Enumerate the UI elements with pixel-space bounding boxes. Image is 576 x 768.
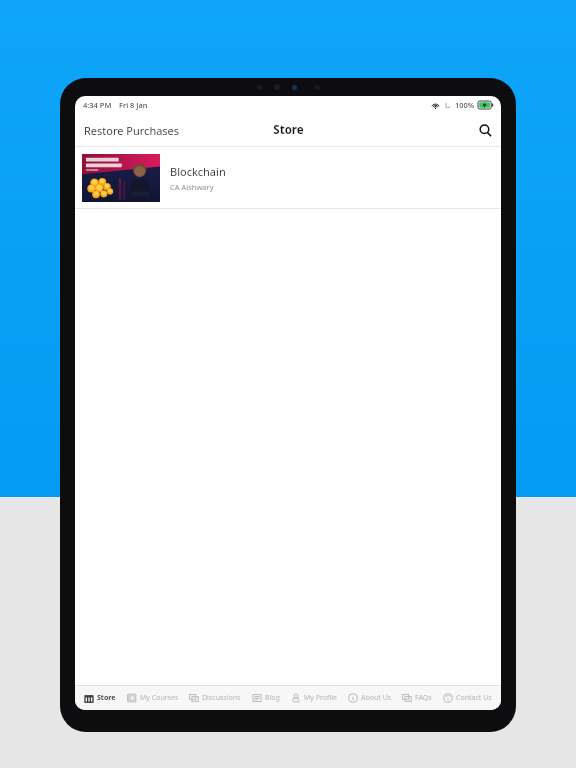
staticText: Store	[273, 122, 304, 138]
staticText: Contact Us	[456, 693, 492, 703]
button[interactable]: My Courses	[125, 690, 181, 706]
staticText: About Us	[361, 693, 392, 703]
button[interactable]: About Us	[346, 690, 394, 706]
button[interactable]: Contact Us	[441, 690, 494, 706]
staticText: FAQs	[415, 693, 432, 703]
staticText: My Courses	[140, 693, 179, 703]
button[interactable]: FAQs	[400, 690, 434, 706]
staticText: Restore Purchases	[84, 123, 180, 138]
button[interactable]: Blockchain	[75, 147, 501, 208]
button[interactable]: Search	[470, 118, 501, 143]
button[interactable]: Blog	[250, 690, 282, 706]
button[interactable]: My Profile	[289, 690, 339, 706]
staticText: Discussions	[202, 693, 241, 703]
staticText: 100%	[455, 100, 475, 110]
staticText: Blockchain	[170, 164, 226, 179]
staticText: My Profile	[304, 693, 337, 703]
button[interactable]: Store	[82, 690, 118, 706]
staticText: Blog	[265, 693, 280, 703]
button[interactable]: Restore Purchases	[75, 117, 189, 144]
button[interactable]: Discussions	[187, 690, 243, 706]
staticText: Fri 8 Jan	[119, 100, 148, 110]
staticText: 4:34 PM	[83, 100, 112, 110]
staticText: Store	[97, 693, 116, 703]
staticText: CA Aishwary	[170, 182, 214, 192]
